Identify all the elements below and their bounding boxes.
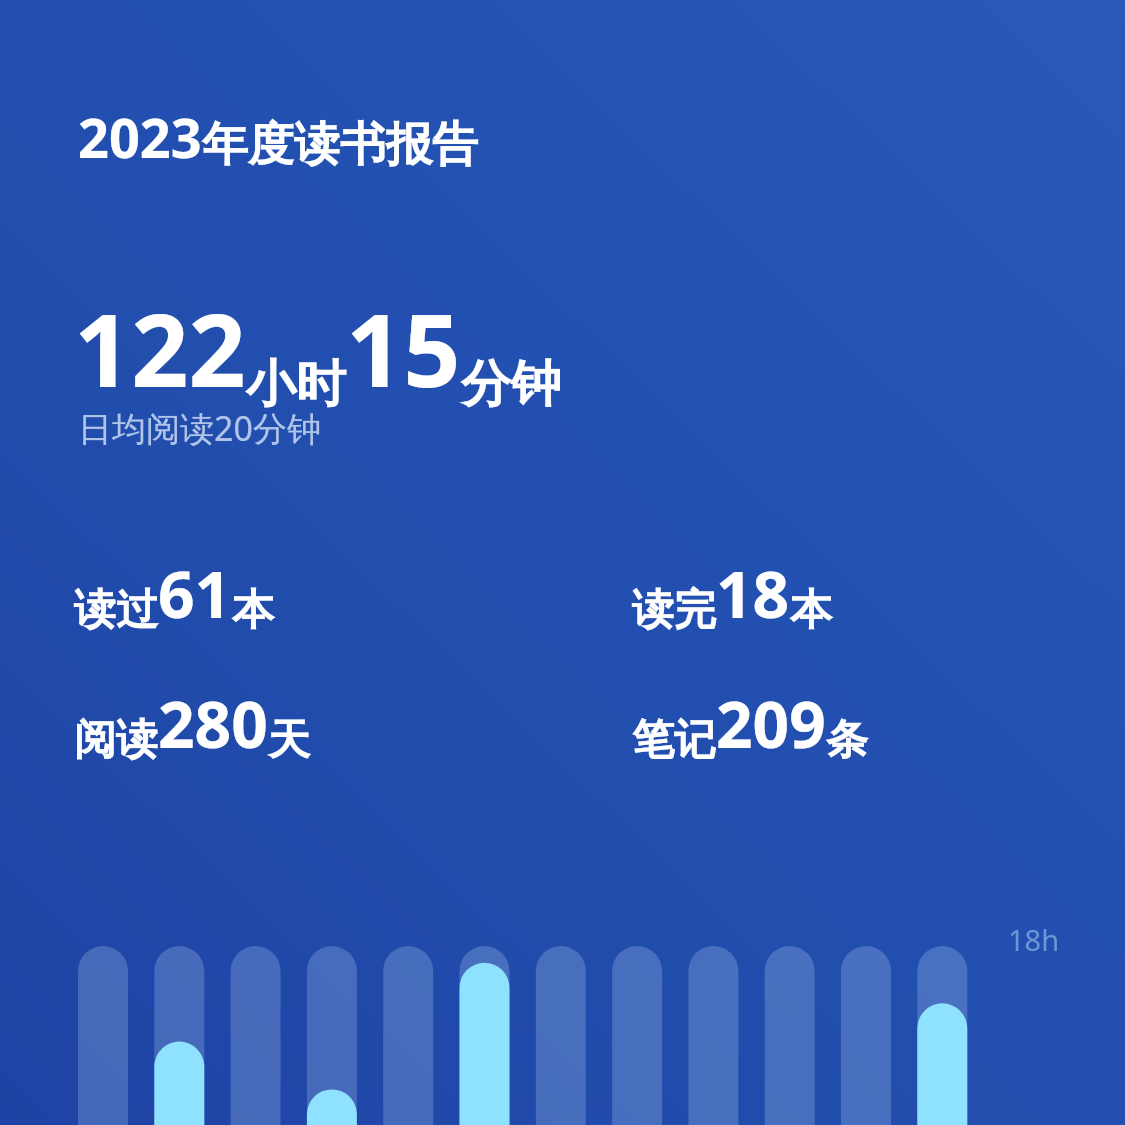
staticText: 笔记 <box>632 714 716 767</box>
staticText: 本 <box>232 584 274 637</box>
staticText: 2023 <box>78 100 202 174</box>
staticText: 61 <box>158 550 232 637</box>
button[interactable]: 笔记 <box>632 680 868 767</box>
button[interactable]: 读完 <box>632 550 832 637</box>
staticText: 阅读 <box>74 714 158 767</box>
staticText: 15 <box>346 280 461 416</box>
staticText: 209 <box>716 680 826 767</box>
button[interactable]: 读过 <box>74 550 274 637</box>
staticText: 18h <box>1008 920 1060 959</box>
staticText: 122 <box>74 280 246 416</box>
staticText: 280 <box>158 680 268 767</box>
staticText: 日均阅读20分钟 <box>78 405 321 451</box>
staticText: 本 <box>790 584 832 637</box>
staticText: 条 <box>826 714 868 767</box>
staticText: 读过 <box>74 584 158 637</box>
staticText: 18 <box>716 550 790 637</box>
staticText: 小时 <box>246 353 346 416</box>
staticText: 读完 <box>632 584 716 637</box>
button[interactable]: 阅读 <box>74 680 310 767</box>
button[interactable]: 2023 <box>78 100 478 174</box>
staticText: 年度读书报告 <box>202 116 478 174</box>
staticText: 天 <box>268 714 310 767</box>
staticText: 分钟 <box>461 353 561 416</box>
